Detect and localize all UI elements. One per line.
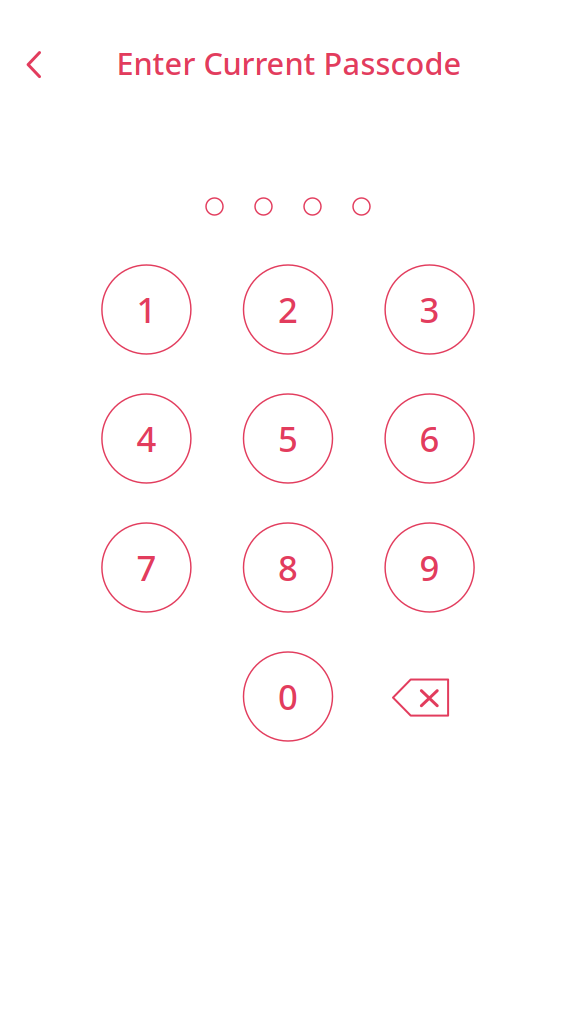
staticText: 7	[136, 544, 156, 590]
staticText: 2	[278, 286, 298, 332]
button[interactable]: 9	[385, 523, 474, 612]
staticText: 8	[278, 544, 298, 590]
button[interactable]: 3	[385, 265, 474, 354]
button[interactable]: Back	[12, 42, 56, 86]
button[interactable]: 0	[243, 652, 332, 741]
button[interactable]: 5	[243, 394, 332, 483]
staticText: 4	[136, 415, 156, 461]
staticText: 0	[278, 673, 298, 719]
staticText: 6	[420, 415, 440, 461]
staticText: 3	[420, 286, 440, 332]
button[interactable]: Delete	[385, 652, 474, 741]
button[interactable]: 1	[102, 265, 191, 354]
staticText: Enter Current Passcode	[116, 43, 461, 83]
button[interactable]: 8	[243, 523, 332, 612]
button[interactable]: 4	[102, 394, 191, 483]
staticText: 1	[136, 286, 156, 332]
staticText: 9	[420, 544, 440, 590]
button[interactable]: 2	[243, 265, 332, 354]
button[interactable]: 6	[385, 394, 474, 483]
button[interactable]: 7	[102, 523, 191, 612]
staticText: 5	[278, 415, 298, 461]
